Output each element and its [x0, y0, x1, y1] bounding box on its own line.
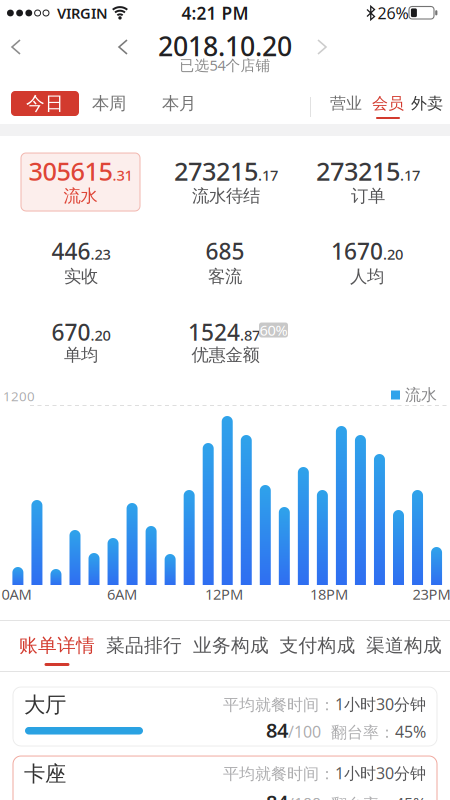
staticText: 平均就餐时间：: [223, 764, 335, 784]
button[interactable]: 大厅: [13, 687, 437, 746]
button[interactable]: 支付构成: [279, 634, 355, 656]
staticText: 1524: [188, 317, 240, 347]
staticText: 23PM: [412, 584, 450, 604]
staticText: 营业: [330, 94, 362, 113]
button[interactable]: 营业: [326, 91, 366, 116]
staticText: .87: [240, 325, 260, 345]
button[interactable]: Back: [2, 32, 30, 62]
staticText: 273215: [316, 154, 400, 188]
button[interactable]: 业务构成: [193, 634, 269, 656]
staticText: 流水待结: [192, 185, 260, 207]
staticText: /100: [288, 721, 321, 742]
button[interactable]: 今日: [11, 91, 79, 116]
staticText: VIRGIN: [57, 3, 108, 23]
staticText: 18PM: [310, 584, 348, 604]
staticText: 实收: [64, 266, 98, 287]
staticText: 685: [205, 236, 244, 266]
staticText: .20: [90, 325, 110, 345]
button[interactable]: 卡座: [13, 756, 437, 800]
staticText: 流水: [63, 185, 97, 207]
staticText: 翻台率：: [321, 723, 395, 742]
staticText: 84: [266, 717, 288, 743]
staticText: 外卖: [411, 94, 443, 113]
staticText: 翻台率：: [321, 795, 395, 800]
staticText: 会员: [372, 94, 404, 113]
staticText: 12PM: [205, 584, 243, 604]
staticText: 273215: [174, 154, 258, 188]
button[interactable]: 渠道构成: [366, 634, 442, 656]
staticText: 已选54个店铺: [179, 55, 270, 75]
staticText: 1小时30分钟: [335, 693, 426, 714]
staticText: 平均就餐时间：: [223, 695, 335, 715]
staticText: 今日: [26, 92, 64, 115]
staticText: 优惠金额: [191, 344, 259, 366]
staticText: 4:21 PM: [181, 1, 248, 24]
staticText: 1670: [331, 236, 383, 266]
button[interactable]: 会员: [368, 91, 408, 116]
staticText: 84: [266, 789, 288, 800]
staticText: 支付构成: [279, 634, 355, 657]
staticText: 渠道构成: [366, 634, 442, 657]
staticText: 2018.10.20: [158, 28, 292, 64]
staticText: 菜品排行: [106, 634, 182, 657]
staticText: .23: [90, 244, 110, 264]
staticText: 45%: [395, 793, 426, 800]
staticText: 卡座: [24, 761, 66, 787]
staticText: 446: [51, 236, 90, 266]
staticText: .31: [112, 165, 132, 185]
button[interactable]: 外卖: [407, 91, 447, 116]
staticText: 1小时30分钟: [335, 762, 426, 783]
staticText: 45%: [395, 721, 426, 742]
staticText: /100: [288, 793, 321, 800]
staticText: .17: [400, 165, 420, 185]
staticText: 6AM: [107, 584, 137, 604]
button[interactable]: 账单详情: [19, 634, 95, 656]
button[interactable]: 菜品排行: [106, 634, 182, 656]
button[interactable]: 已选54个店铺: [145, 57, 305, 73]
staticText: 0AM: [1, 584, 31, 604]
button[interactable]: 本月: [151, 91, 207, 116]
button[interactable]: Next day: [308, 32, 336, 62]
button[interactable]: 本周: [81, 91, 137, 116]
staticText: 单均: [64, 344, 98, 366]
staticText: 670: [51, 317, 90, 347]
staticText: 本周: [92, 93, 126, 114]
staticText: .17: [258, 165, 278, 185]
staticText: 流水: [405, 385, 437, 405]
staticText: 60%: [259, 320, 287, 340]
staticText: 订单: [351, 185, 385, 207]
staticText: 26%: [377, 2, 408, 24]
staticText: 1200: [3, 387, 35, 405]
staticText: 账单详情: [19, 634, 95, 657]
staticText: 305615: [28, 154, 112, 188]
staticText: 业务构成: [193, 634, 269, 657]
staticText: 大厅: [24, 692, 66, 718]
staticText: .20: [383, 244, 403, 264]
button[interactable]: Previous day: [109, 32, 137, 62]
staticText: 本月: [162, 93, 196, 114]
staticText: 客流: [208, 266, 242, 287]
staticText: 人均: [350, 266, 384, 287]
